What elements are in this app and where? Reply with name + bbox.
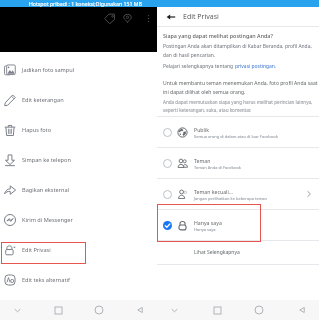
staticText: Teman	[194, 157, 211, 164]
staticText: Jadikan foto sampul	[22, 66, 75, 74]
staticText: Edit keterangan	[22, 96, 64, 104]
staticText: Pelajari selengkapnya tentang	[163, 63, 235, 70]
button[interactable]: Edit Privasi	[0, 235, 157, 265]
button[interactable]: Edit teks alternatif	[0, 265, 157, 295]
button[interactable]: Recents	[51, 303, 65, 317]
staticText: Lihat Selengkapnya	[194, 249, 240, 256]
staticText: Hanya saya	[194, 219, 222, 226]
button[interactable]: Recents	[210, 303, 224, 317]
staticText: Anda dapat memutuskan siapa yang harus m…	[163, 99, 313, 113]
staticText: Edit Privasi	[22, 246, 51, 254]
staticText: Hapus foto	[22, 126, 52, 134]
staticText: Simpan ke telepon	[22, 156, 71, 164]
staticText: Bagikan eksternal	[22, 186, 70, 194]
button[interactable]: Hide	[167, 303, 181, 317]
button[interactable]: Publik	[157, 117, 319, 147]
button[interactable]: Edit keterangan	[0, 85, 157, 115]
button[interactable]: Jadikan foto sampul	[0, 55, 157, 85]
staticText: Postingan Anda akan ditampilkan di Kabar…	[163, 43, 312, 59]
button[interactable]: Home	[252, 303, 266, 317]
staticText: Edit teks alternatif	[22, 276, 70, 284]
button[interactable]: More options	[141, 11, 155, 25]
button[interactable]: Back	[157, 7, 319, 26]
button[interactable]: Home	[92, 303, 106, 317]
staticText: Hotspot pribadi : 1 koneksi;Digunakan 15…	[29, 0, 142, 7]
staticText: Edit Privasi	[183, 12, 219, 22]
button[interactable]: Kirim di Messenger	[0, 205, 157, 235]
staticText: Kirim di Messenger	[22, 216, 73, 224]
staticText: Semua orang di dalam atau di luar Facebo…	[194, 134, 278, 139]
staticText: Siapa yang dapat melihat postingan Anda?	[163, 32, 273, 39]
button[interactable]: Location	[119, 10, 135, 26]
button[interactable]: privasi postingan.	[235, 63, 277, 70]
button[interactable]: Simpan ke telepon	[0, 145, 157, 175]
button[interactable]: Bagikan eksternal	[0, 175, 157, 205]
button[interactable]: Lihat Selengkapnya	[157, 241, 319, 264]
button[interactable]: Tag	[101, 10, 117, 26]
button[interactable]: Hanya saya	[157, 210, 319, 240]
button[interactable]: Back	[133, 303, 147, 317]
button[interactable]: Hapus foto	[0, 115, 157, 145]
button[interactable]: Teman kecuali...	[157, 179, 319, 209]
staticText: Jangan perlihatkan ke beberapa teman	[194, 196, 268, 201]
staticText: Teman Anda di Facebook	[194, 165, 241, 170]
button[interactable]: Back	[295, 303, 309, 317]
staticText: Publik	[194, 126, 209, 133]
staticText: Hanya saya	[194, 227, 216, 232]
button[interactable]: Teman	[157, 148, 319, 178]
staticText: Untuk membantu teman menemukan Anda, fot…	[163, 80, 318, 96]
button[interactable]: Back	[163, 9, 179, 25]
button[interactable]: Hide	[10, 303, 24, 317]
staticText: Teman kecuali...	[194, 188, 233, 195]
